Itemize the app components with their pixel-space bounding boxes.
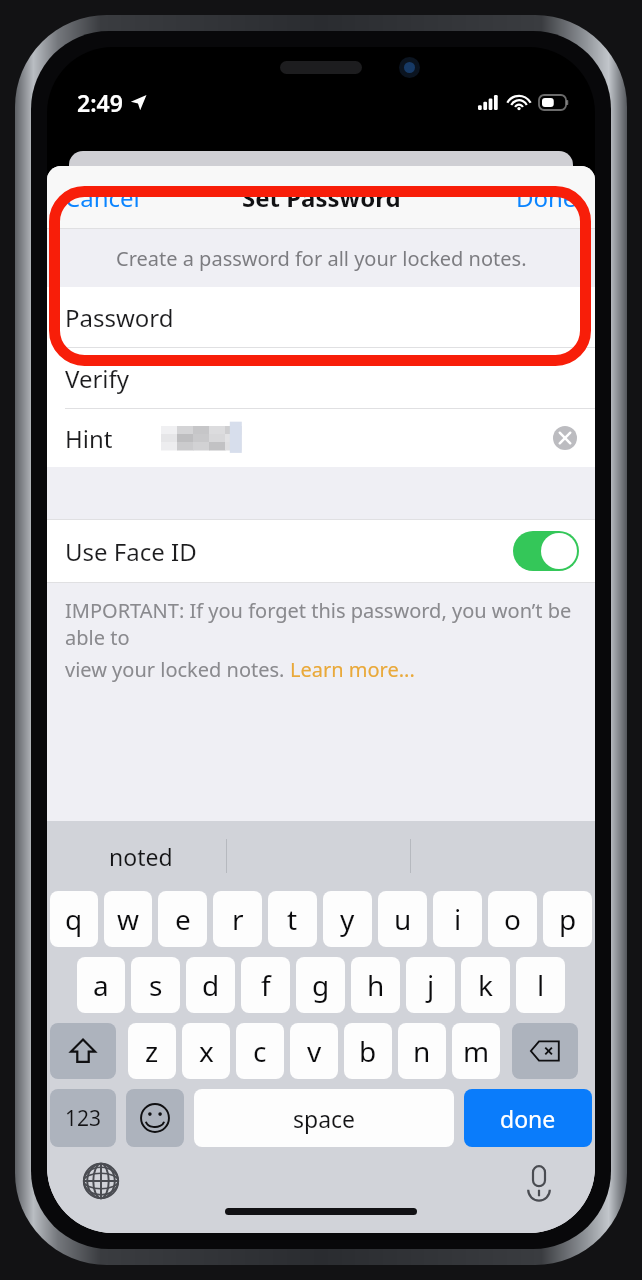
staticText: p [559, 900, 577, 938]
staticText: d [202, 966, 220, 1004]
button[interactable]: h [351, 957, 400, 1013]
button[interactable]: Verify [47, 348, 595, 408]
button[interactable]: r [213, 891, 262, 947]
button[interactable]: d [186, 957, 235, 1013]
staticText: b [359, 1032, 377, 1070]
staticText: f [261, 966, 271, 1004]
button[interactable]: Clear text [553, 426, 577, 450]
staticText: l [537, 966, 545, 1004]
button[interactable]: w [104, 891, 152, 947]
staticText: m [463, 1032, 490, 1070]
button[interactable]: space [194, 1089, 454, 1147]
button[interactable]: Switch keyboard [81, 1161, 121, 1201]
button[interactable]: j [406, 957, 455, 1013]
staticText: v [307, 1032, 322, 1070]
staticText: Learn more... [290, 656, 415, 683]
staticText: e [175, 900, 191, 938]
button[interactable]: i [433, 891, 482, 947]
staticText: Set Password [242, 181, 401, 214]
button[interactable]: b [344, 1023, 392, 1079]
staticText: g [312, 966, 330, 1004]
staticText: IMPORTANT: If you forget this password, … [65, 597, 577, 651]
staticText: t [287, 900, 298, 938]
button[interactable]: c [236, 1023, 284, 1079]
staticText: y [340, 900, 355, 938]
staticText: s [149, 966, 163, 1004]
staticText: a [93, 966, 109, 1004]
staticText: i [454, 900, 462, 938]
button[interactable]: u [378, 891, 427, 947]
button[interactable]: n [398, 1023, 446, 1079]
button[interactable]: done [464, 1089, 592, 1147]
staticText: x [199, 1032, 214, 1070]
button[interactable]: l [516, 957, 565, 1013]
button[interactable]: k [461, 957, 510, 1013]
button[interactable]: Use Face ID toggle, on [513, 531, 579, 571]
staticText: Cancel [65, 181, 140, 214]
staticText: done [500, 1103, 556, 1134]
staticText: 2:49 [77, 87, 123, 118]
button[interactable]: Cancel [47, 169, 158, 226]
button[interactable]: Shift [50, 1023, 116, 1079]
button[interactable]: y [323, 891, 372, 947]
button[interactable]: Hint [47, 409, 595, 467]
button[interactable]: p [543, 891, 592, 947]
staticText: o [504, 900, 521, 938]
staticText: view your locked notes. [65, 656, 290, 683]
button[interactable]: x [182, 1023, 230, 1079]
staticText: Create a password for all your locked no… [116, 245, 527, 272]
button[interactable]: q [50, 891, 98, 947]
button[interactable]: z [128, 1023, 176, 1079]
button[interactable]: t [268, 891, 317, 947]
staticText: c [253, 1032, 267, 1070]
button[interactable]: a [77, 957, 125, 1013]
button[interactable]: Backspace [512, 1023, 578, 1079]
button[interactable]: Dictation [519, 1161, 559, 1201]
button[interactable]: m [452, 1023, 500, 1079]
staticText: h [367, 966, 385, 1004]
staticText: Password [65, 301, 174, 334]
staticText: n [413, 1032, 431, 1070]
staticText: j [427, 966, 435, 1004]
staticText: q [65, 900, 83, 938]
button[interactable]: Learn more... [290, 656, 415, 683]
button[interactable]: Use Face ID [47, 520, 595, 582]
staticText: Verify [65, 362, 130, 395]
button[interactable]: f [241, 957, 290, 1013]
button[interactable]: o [488, 891, 537, 947]
button[interactable]: v [290, 1023, 338, 1079]
staticText: z [145, 1032, 159, 1070]
button[interactable]: g [296, 957, 345, 1013]
staticText: w [117, 900, 140, 938]
staticText: Hint [65, 422, 113, 455]
button[interactable]: s [131, 957, 180, 1013]
staticText: noted [109, 841, 173, 872]
staticText: u [394, 900, 412, 938]
staticText: Use Face ID [65, 535, 197, 568]
button[interactable]: Emoji [126, 1089, 184, 1147]
button[interactable]: Done [498, 169, 595, 226]
staticText: space [293, 1103, 356, 1134]
button[interactable]: 123 [50, 1089, 116, 1147]
button[interactable]: e [158, 891, 207, 947]
staticText: Done [516, 181, 577, 214]
button[interactable]: Password [47, 287, 595, 347]
staticText: k [478, 966, 493, 1004]
staticText: r [232, 900, 244, 938]
staticText: 123 [65, 1104, 102, 1133]
